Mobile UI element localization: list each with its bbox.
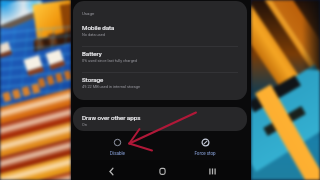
staticText: 49.22 MB used in internal storage <box>82 84 140 89</box>
button[interactable]: Back <box>95 160 127 180</box>
staticText: 0% used since last fully charged <box>82 58 138 63</box>
staticText: Usage <box>82 11 95 16</box>
button[interactable]: Draw over other apps <box>73 111 247 131</box>
button[interactable]: Home <box>146 160 178 180</box>
button[interactable]: Disable <box>91 137 143 161</box>
staticText: No data used <box>82 32 106 37</box>
button[interactable]: Mobile data <box>73 21 247 46</box>
staticText: Draw over other apps <box>82 114 141 121</box>
staticText: Battery <box>82 50 102 57</box>
staticText: Force stop <box>194 151 216 156</box>
staticText: Disable <box>110 151 125 156</box>
button[interactable]: Force stop <box>179 137 231 161</box>
button[interactable]: Battery <box>73 47 247 72</box>
staticText: On <box>82 122 87 127</box>
staticText: Storage <box>82 76 104 83</box>
button[interactable]: Recent apps <box>196 160 228 180</box>
staticText: Mobile data <box>82 24 115 31</box>
button[interactable]: Storage <box>73 73 247 98</box>
